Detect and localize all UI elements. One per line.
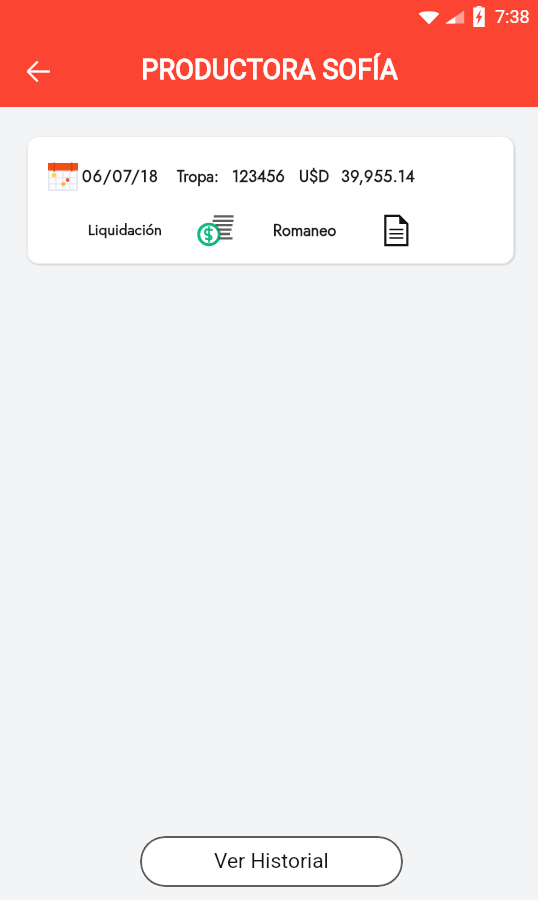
staticText: Romaneo <box>273 219 337 242</box>
button[interactable]: 06/07/18 <box>27 136 514 264</box>
staticText: Tropa: <box>177 165 219 188</box>
button[interactable]: Back <box>14 47 62 95</box>
staticText: 06/07/18 <box>82 165 159 188</box>
staticText: Liquidación <box>88 219 162 241</box>
button[interactable]: Ver Historial <box>140 836 403 887</box>
staticText: 7:38 <box>495 6 530 27</box>
staticText: Ver Historial <box>214 849 329 874</box>
staticText: 123456 <box>232 165 285 188</box>
staticText: PRODUCTORA SOFÍA <box>141 54 398 86</box>
staticText: U$D <box>299 165 330 188</box>
staticText: 39,955.14 <box>341 165 416 188</box>
